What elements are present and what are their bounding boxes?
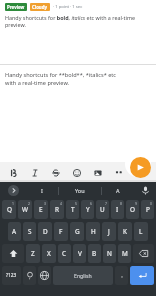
staticText: ?123: [6, 272, 17, 279]
button[interactable]: Backspace: [133, 244, 154, 263]
staticText: You: [75, 187, 85, 194]
button[interactable]: P: [141, 200, 154, 219]
staticText: 1: [12, 201, 14, 206]
staticText: 8: [120, 201, 122, 206]
button[interactable]: I: [26, 182, 58, 199]
staticText: D: [43, 227, 48, 236]
button[interactable]: R: [50, 200, 64, 219]
staticText: U: [100, 205, 105, 214]
button[interactable]: V: [73, 244, 86, 263]
button[interactable]: ?123: [2, 266, 21, 285]
staticText: V: [78, 249, 82, 258]
button[interactable]: Shift: [2, 244, 24, 263]
staticText: T: [71, 205, 75, 214]
button[interactable]: You: [59, 182, 101, 199]
button[interactable]: F: [54, 222, 68, 241]
button[interactable]: X: [42, 244, 56, 263]
staticText: Y: [86, 205, 90, 214]
button[interactable]: Period: [115, 266, 128, 285]
staticText: H: [91, 227, 96, 236]
button[interactable]: Cloudy: [30, 3, 50, 11]
button[interactable]: W: [18, 200, 32, 219]
staticText: S: [28, 227, 32, 236]
staticText: R: [55, 205, 59, 214]
staticText: 6: [90, 201, 92, 206]
button[interactable]: Quote: [113, 167, 125, 179]
staticText: 4: [60, 201, 62, 206]
button[interactable]: S: [23, 222, 36, 241]
button[interactable]: H: [86, 222, 100, 241]
button[interactable]: G: [70, 222, 84, 241]
staticText: I: [116, 205, 119, 214]
button[interactable]: L: [134, 222, 148, 241]
button[interactable]: Q: [2, 200, 16, 219]
button[interactable]: Italic: [29, 167, 41, 179]
button[interactable]: A: [102, 182, 134, 199]
button[interactable]: E: [34, 200, 48, 219]
staticText: P: [146, 205, 150, 214]
staticText: E: [39, 205, 43, 214]
staticText: A: [12, 227, 17, 236]
staticText: Handy shortcuts for bold, italics etc wi…: [5, 14, 151, 28]
button[interactable]: Y: [81, 200, 94, 219]
staticText: L: [139, 227, 143, 236]
button[interactable]: I: [111, 200, 124, 219]
staticText: F: [59, 227, 63, 236]
button[interactable]: D: [38, 222, 52, 241]
button[interactable]: J: [102, 222, 116, 241]
staticText: Z: [31, 249, 35, 258]
staticText: G: [75, 227, 80, 236]
staticText: W: [22, 205, 28, 214]
staticText: X: [47, 249, 51, 258]
staticText: O: [130, 205, 135, 214]
staticText: · 1 point · 1 sec: [53, 4, 83, 10]
button[interactable]: Send: [130, 157, 151, 178]
staticText: J: [108, 227, 110, 236]
staticText: 3: [44, 201, 46, 206]
button[interactable]: Comma: [23, 266, 36, 285]
button[interactable]: Preview: [5, 3, 27, 11]
button[interactable]: T: [66, 200, 79, 219]
staticText: 0: [150, 201, 152, 206]
button[interactable]: Insert image: [92, 167, 104, 179]
staticText: English: [74, 272, 92, 279]
staticText: 9: [135, 201, 137, 206]
staticText: N: [107, 249, 112, 258]
staticText: Cloudy: [32, 4, 48, 10]
staticText: C: [62, 249, 67, 258]
button[interactable]: Enter: [130, 266, 154, 285]
staticText: A: [116, 187, 120, 194]
button[interactable]: O: [126, 200, 139, 219]
button[interactable]: A: [8, 222, 21, 241]
button[interactable]: Bold: [8, 167, 20, 179]
staticText: M: [122, 249, 128, 258]
button[interactable]: M: [118, 244, 131, 263]
staticText: I: [41, 187, 43, 194]
staticText: Preview: [7, 4, 25, 10]
button[interactable]: Voice input: [134, 182, 156, 199]
button[interactable]: C: [58, 244, 71, 263]
button[interactable]: K: [118, 222, 132, 241]
staticText: Q: [7, 205, 12, 214]
button[interactable]: B: [88, 244, 101, 263]
button[interactable]: N: [103, 244, 116, 263]
staticText: B: [92, 249, 97, 258]
button[interactable]: U: [96, 200, 109, 219]
staticText: 5: [75, 201, 77, 206]
button[interactable]: Change language: [38, 266, 51, 285]
staticText: Handy shortcuts for **bold**, *italics* …: [5, 71, 117, 87]
button[interactable]: Expand toolbar: [0, 182, 26, 199]
button[interactable]: English: [53, 266, 113, 285]
button[interactable]: Emoji: [71, 167, 83, 179]
staticText: 2: [28, 201, 30, 206]
staticText: 7: [105, 201, 107, 206]
button[interactable]: Z: [26, 244, 40, 263]
button[interactable]: Strikethrough: [50, 167, 62, 179]
staticText: K: [123, 227, 127, 236]
